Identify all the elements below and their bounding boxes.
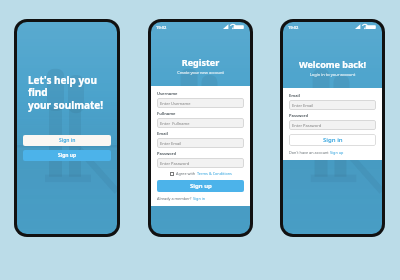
button[interactable]: Agree with [157,171,244,176]
button[interactable]: Enter Username [160,98,241,108]
staticText: Sign up [190,182,212,190]
button[interactable]: Enter Email [292,100,373,110]
staticText: Password [289,113,309,118]
staticText: Already a member? [157,196,193,201]
staticText: Sign up [330,150,344,155]
staticText: 19:02 [288,25,299,30]
staticText: Enter Username [160,101,191,106]
staticText: Enter Email [160,141,182,146]
button[interactable]: Sign up [23,150,111,161]
staticText: Enter Password [160,161,190,166]
button[interactable]: Sign up [157,180,244,192]
staticText: Enter Password [292,123,322,128]
staticText: Welcome back! [283,58,382,70]
button[interactable]: Sign in [23,135,111,146]
staticText: Password [157,151,177,156]
button[interactable]: Don't have an account [289,150,344,155]
button[interactable]: Enter Email [160,138,241,148]
staticText: Agree with [176,171,197,176]
staticText: Username [157,91,178,96]
staticText: 19:02 [156,25,167,30]
button[interactable]: Sign in [289,134,376,146]
staticText: Create your new account [151,70,250,75]
button[interactable]: Enter Fullname [160,118,241,128]
staticText: Email [289,93,300,98]
staticText: Let's help you find your soulmate! [28,73,117,112]
staticText: Sign in [59,137,76,144]
staticText: Fullname [157,111,176,116]
staticText: Sign in [323,136,343,144]
button[interactable]: Enter Password [160,158,241,168]
staticText: Sign up [58,152,77,159]
staticText: Email [157,131,168,136]
staticText: Don't have an account [289,150,330,155]
staticText: Register [151,56,250,68]
button[interactable]: Already a member? [157,196,206,201]
staticText: Login in to your account [283,72,382,77]
staticText: Enter Fullname [160,121,190,126]
button[interactable]: Enter Password [292,120,373,130]
staticText: Sign in [193,196,206,201]
staticText: Terms & Conditions [197,171,232,176]
staticText: Enter Email [292,103,314,108]
